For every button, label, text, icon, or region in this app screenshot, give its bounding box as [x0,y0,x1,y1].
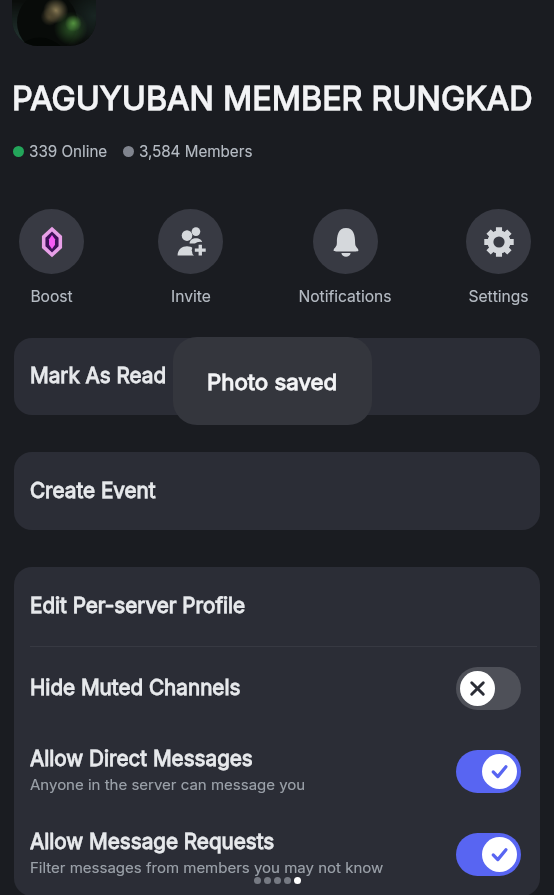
button[interactable]: Edit Per-server Profile [14,567,540,646]
staticText: Anyone in the server can message you [30,775,306,793]
staticText: 3,584 Members [139,142,253,160]
staticText: Hide Muted Channels [30,675,241,700]
staticText: Create Event [30,478,156,503]
staticText: Boost [30,287,73,306]
staticText: Allow Direct Messages [30,746,253,771]
staticText: Photo saved [207,368,338,395]
staticText: Notifications [298,287,392,306]
staticText: Settings [468,287,529,306]
button[interactable]: Create Event [14,452,540,530]
button[interactable]: Hide Muted Channels [14,647,540,730]
button[interactable]: Allow Direct Messages [14,730,540,813]
staticText: PAGUYUBAN MEMBER RUNGKAD [12,79,533,118]
button[interactable]: Settings [466,209,531,306]
staticText: 339 Online [29,142,108,160]
staticText: Mark As Read [30,363,167,388]
staticText: Edit Per-server Profile [30,593,246,618]
button[interactable]: Mark As Read [14,338,540,415]
button[interactable]: Allow Message Requests [14,813,540,895]
button[interactable]: Invite [158,209,223,306]
staticText: Invite [171,287,211,306]
button[interactable]: Boost [19,209,84,306]
staticText: Filter messages from members you may not… [30,858,384,876]
staticText: Allow Message Requests [30,829,275,854]
button[interactable]: Notifications [298,209,392,306]
